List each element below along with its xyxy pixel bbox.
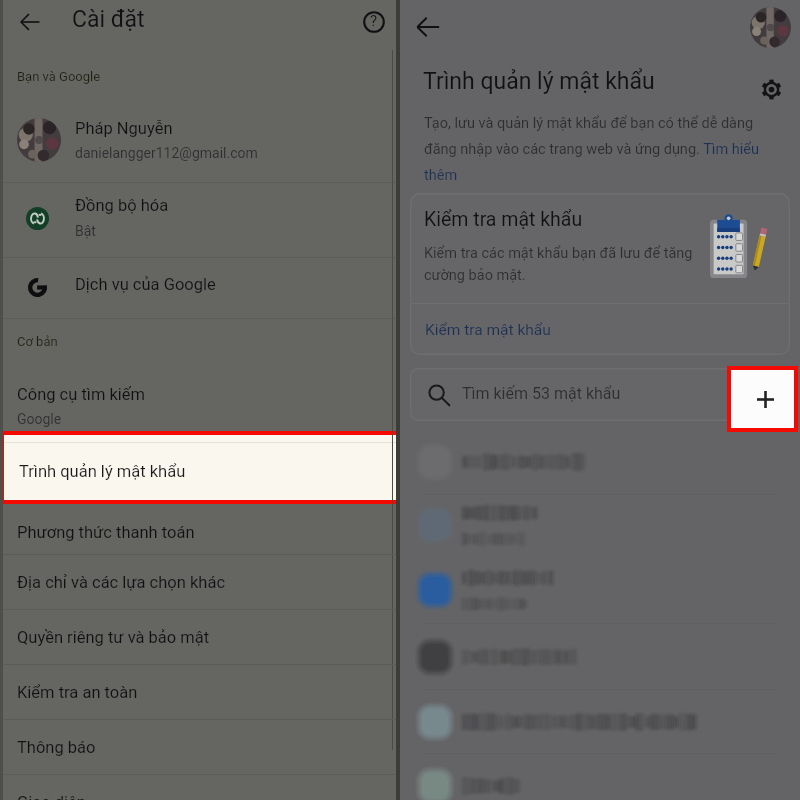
staticText: Trình quản lý mật khẩu	[423, 68, 655, 95]
staticText: Quyền riêng tư và bảo mật	[17, 628, 210, 647]
button[interactable]: Pháp Nguyễn	[0, 103, 396, 182]
button[interactable]: Saved password	[400, 627, 800, 687]
staticText: Bật	[75, 223, 96, 239]
staticText: Phương thức thanh toán	[17, 523, 195, 542]
staticText: Đồng bộ hóa	[75, 196, 169, 215]
button[interactable]: Dịch vụ của Google	[0, 258, 396, 318]
button[interactable]: Trình quản lý mật khẩu	[4, 435, 396, 500]
button[interactable]: Saved password	[400, 692, 800, 752]
button[interactable]: Giao diện	[0, 775, 396, 800]
button[interactable]: Địa chỉ và các lựa chọn khác	[0, 555, 396, 609]
staticText: Kiểm tra mật khẩu	[425, 321, 551, 339]
button[interactable]: Saved password	[400, 560, 800, 620]
staticText: Cơ bản	[17, 334, 58, 349]
button[interactable]: Add password	[731, 370, 794, 428]
button[interactable]: Saved password	[400, 756, 800, 800]
staticText: Công cụ tìm kiếm	[17, 385, 146, 404]
button[interactable]: Kiểm tra mật khẩu	[410, 304, 790, 355]
staticText: danielangger112@gmail.com	[75, 145, 258, 161]
staticText: Kiểm tra các mật khẩu bạn đã lưu để tăng…	[424, 245, 704, 284]
staticText: Thông báo	[17, 738, 96, 757]
button[interactable]: Công cụ tìm kiếm	[0, 370, 396, 431]
button[interactable]: Quyền riêng tư và bảo mật	[0, 610, 396, 664]
staticText: Pháp Nguyễn	[75, 119, 173, 138]
button[interactable]: Account	[748, 5, 792, 49]
staticText: Cài đặt	[72, 6, 145, 33]
staticText: Google	[17, 411, 62, 427]
staticText: Tìm kiếm 53 mật khẩu	[462, 384, 621, 403]
staticText: Tạo, lưu và quản lý mật khẩu để bạn có t…	[424, 115, 769, 184]
button[interactable]: Back	[8, 0, 52, 44]
staticText: Địa chỉ và các lựa chọn khác	[17, 573, 226, 592]
button[interactable]: Phương thức thanh toán	[0, 505, 396, 559]
staticText: Giao diện	[17, 793, 86, 800]
button[interactable]: Saved password	[400, 432, 800, 492]
button[interactable]: Thông báo	[0, 720, 396, 774]
button[interactable]: Kiểm tra an toàn	[0, 665, 396, 719]
button[interactable]: Help	[352, 0, 396, 44]
staticText: Kiểm tra mật khẩu	[424, 208, 583, 231]
button[interactable]: Saved password	[400, 495, 800, 555]
button[interactable]: Đồng bộ hóa	[0, 183, 396, 257]
staticText: Trình quản lý mật khẩu	[19, 462, 186, 481]
button[interactable]: Tìm kiếm 53 mật khẩu	[410, 368, 790, 421]
staticText: Bạn và Google	[17, 69, 101, 84]
staticText: ?	[370, 12, 378, 30]
button[interactable]: Settings	[752, 70, 790, 108]
staticText: Dịch vụ của Google	[75, 275, 216, 294]
staticText: Kiểm tra an toàn	[17, 683, 138, 702]
button[interactable]: Back	[404, 3, 452, 51]
